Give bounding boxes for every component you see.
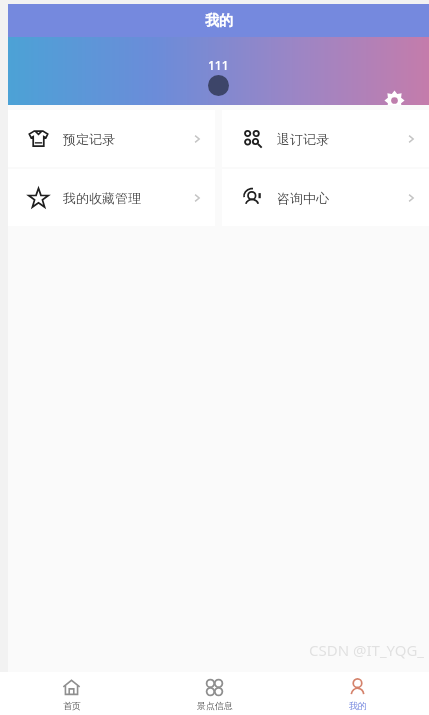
- staticText: 我的: [205, 12, 233, 30]
- staticText: 退订记录: [277, 131, 405, 147]
- button[interactable]: 首页: [0, 672, 143, 715]
- staticText: 111: [208, 57, 229, 73]
- staticText: 我的: [349, 700, 367, 711]
- staticText: 首页: [63, 700, 81, 711]
- button[interactable]: 我的收藏管理: [8, 169, 215, 226]
- staticText: 景点信息: [197, 700, 233, 711]
- staticText: 预定记录: [63, 131, 191, 147]
- button[interactable]: 我的: [286, 672, 429, 715]
- button[interactable]: Settings: [384, 90, 405, 111]
- button[interactable]: 退订记录: [222, 110, 429, 167]
- staticText: CSDN @IT_YQG_: [309, 640, 425, 660]
- staticText: 我的收藏管理: [63, 190, 191, 206]
- button[interactable]: 预定记录: [8, 110, 215, 167]
- button[interactable]: 111: [208, 57, 229, 96]
- button[interactable]: 咨询中心: [222, 169, 429, 226]
- staticText: 咨询中心: [277, 190, 405, 206]
- button[interactable]: 景点信息: [143, 672, 286, 715]
